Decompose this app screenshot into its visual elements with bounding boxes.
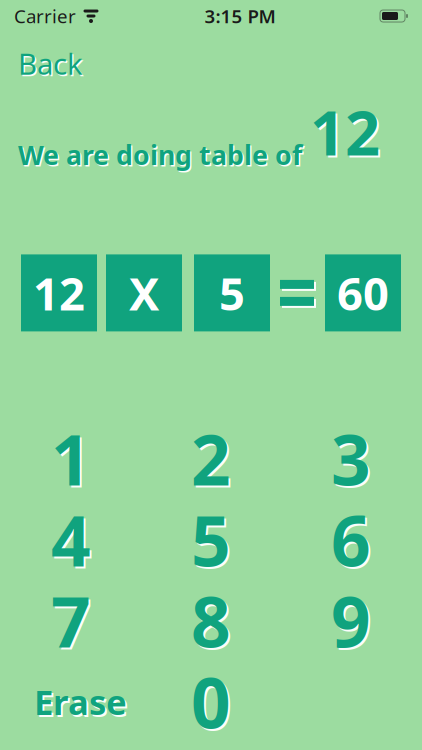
staticText: 60 xyxy=(337,263,389,323)
button[interactable]: 5 xyxy=(141,499,281,580)
button[interactable]: 8 xyxy=(141,580,281,661)
staticText: 12 xyxy=(312,93,382,174)
staticText: We are doing table of xyxy=(19,138,303,174)
staticText: 4 xyxy=(53,495,93,588)
staticText: 8 xyxy=(193,576,233,669)
staticText: 0 xyxy=(191,655,231,748)
staticText: 12 xyxy=(310,91,380,172)
staticText: 3 xyxy=(331,412,371,505)
staticText: 12 xyxy=(33,263,85,323)
staticText: 7 xyxy=(53,576,93,669)
staticText: 2 xyxy=(193,414,233,507)
staticText: 9 xyxy=(331,574,371,667)
staticText: 1 xyxy=(51,412,91,505)
staticText: 5 xyxy=(219,263,245,323)
staticText: 3:15 PM xyxy=(204,4,275,28)
staticText: 7 xyxy=(51,574,91,667)
button[interactable]: Erase xyxy=(1,661,141,742)
staticText: 3 xyxy=(333,414,373,507)
staticText: Erase xyxy=(34,678,127,724)
button[interactable]: Back xyxy=(14,42,87,85)
staticText: 6 xyxy=(331,493,371,586)
staticText: Back xyxy=(19,45,84,84)
staticText: Carrier xyxy=(14,4,76,28)
button[interactable]: 2 xyxy=(141,418,281,499)
button[interactable]: 6 xyxy=(281,499,421,580)
staticText: 6 xyxy=(333,495,373,588)
staticText: 1 xyxy=(53,414,93,507)
staticText: 5 xyxy=(191,493,231,586)
staticText: Back xyxy=(18,44,83,83)
button[interactable]: 3 xyxy=(281,418,421,499)
button[interactable]: 0 xyxy=(141,661,281,742)
staticText: 9 xyxy=(333,576,373,669)
staticText: 2 xyxy=(191,412,231,505)
staticText: 5 xyxy=(193,495,233,588)
button[interactable]: 4 xyxy=(1,499,141,580)
button[interactable]: 9 xyxy=(281,580,421,661)
staticText: 8 xyxy=(191,574,231,667)
button[interactable]: 1 xyxy=(1,418,141,499)
staticText: 0 xyxy=(193,657,233,750)
staticText: We are doing table of xyxy=(18,137,302,172)
staticText: X xyxy=(129,263,159,323)
staticText: 4 xyxy=(51,493,91,586)
staticText: Erase xyxy=(36,680,129,726)
button[interactable]: 7 xyxy=(1,580,141,661)
